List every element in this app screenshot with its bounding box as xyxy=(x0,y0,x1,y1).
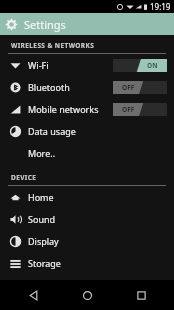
staticText: Wi-Fi xyxy=(28,59,49,71)
button[interactable]: Switch on xyxy=(113,59,167,72)
staticText: Sound xyxy=(28,213,56,225)
button[interactable]: Back xyxy=(12,280,54,310)
staticText: OFF xyxy=(122,83,135,92)
button[interactable]: Storage xyxy=(0,252,174,274)
staticText: DEVICE xyxy=(11,173,37,182)
button[interactable]: Data usage xyxy=(0,120,174,142)
button[interactable]: Mobile networks xyxy=(0,98,174,120)
staticText: OFF xyxy=(122,105,135,114)
staticText: ON xyxy=(147,61,158,70)
button[interactable]: More.. xyxy=(0,142,174,164)
button[interactable]: Recent apps xyxy=(120,280,162,310)
staticText: WIRELESS & NETWORKS xyxy=(11,41,95,50)
staticText: 19:19 xyxy=(150,1,171,12)
button[interactable]: Home xyxy=(66,280,108,310)
button[interactable]: Switch off xyxy=(113,103,167,116)
staticText: Settings xyxy=(24,17,66,32)
button[interactable]: Home xyxy=(0,186,174,208)
button[interactable]: Switch off xyxy=(113,81,167,94)
staticText: Mobile networks xyxy=(28,103,99,115)
staticText: Home xyxy=(28,191,54,203)
button[interactable]: Bluetooth xyxy=(0,76,174,98)
button[interactable]: Wi-Fi xyxy=(0,54,174,76)
other: Settings xyxy=(5,18,18,31)
staticText: Storage xyxy=(28,257,61,269)
staticText: Bluetooth xyxy=(28,81,70,93)
staticText: More.. xyxy=(28,147,56,159)
staticText: Display xyxy=(28,235,59,247)
button[interactable]: Settings xyxy=(0,13,174,35)
button[interactable]: Display xyxy=(0,230,174,252)
staticText: Data usage xyxy=(28,125,76,137)
button[interactable]: Sound xyxy=(0,208,174,230)
